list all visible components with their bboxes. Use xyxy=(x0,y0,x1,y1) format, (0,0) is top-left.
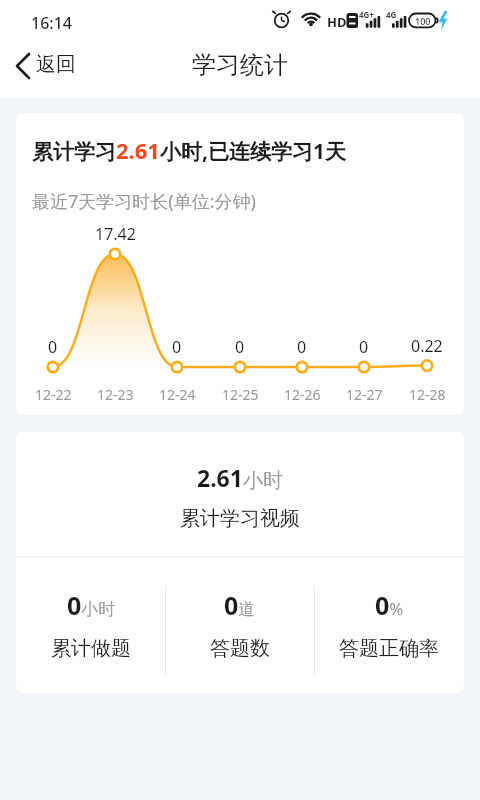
staticText: 答题数 xyxy=(210,636,270,661)
staticText: 0 xyxy=(235,336,245,358)
staticText: 12-24 xyxy=(159,385,196,404)
staticText: 0 xyxy=(172,336,182,358)
staticText: 0道 xyxy=(224,588,256,622)
staticText: 12-23 xyxy=(97,385,134,404)
staticText: 返回 xyxy=(36,52,76,77)
staticText: 2.61小时 xyxy=(197,462,283,493)
staticText: 0小时 xyxy=(67,588,116,622)
staticText: 0.22 xyxy=(411,335,443,357)
staticText: 12-22 xyxy=(35,385,72,404)
staticText: 4G+ xyxy=(359,9,374,20)
staticText: 12-26 xyxy=(284,385,321,404)
staticText: 0% xyxy=(375,588,404,622)
staticText: 17.42 xyxy=(95,223,136,245)
staticText: 学习统计 xyxy=(192,50,288,80)
staticText: 16:14 xyxy=(31,12,72,34)
staticText: 12-27 xyxy=(346,385,383,404)
staticText: 累计学习2.61小时,已连续学习1天 xyxy=(32,135,346,165)
staticText: 0 xyxy=(297,336,307,358)
staticText: 4G xyxy=(386,9,397,20)
staticText: 累计学习视频 xyxy=(180,506,300,531)
staticText: 答题正确率 xyxy=(339,636,439,661)
staticText: 12-28 xyxy=(409,385,446,404)
staticText: 0 xyxy=(48,336,58,358)
staticText: 累计做题 xyxy=(51,636,131,661)
button[interactable]: 返回 xyxy=(8,48,88,86)
staticText: 100 xyxy=(415,15,431,27)
staticText: HD xyxy=(327,13,347,31)
staticText: 0 xyxy=(359,336,369,358)
staticText: 12-25 xyxy=(222,385,259,404)
staticText: 最近7天学习时长(单位:分钟) xyxy=(32,189,256,214)
